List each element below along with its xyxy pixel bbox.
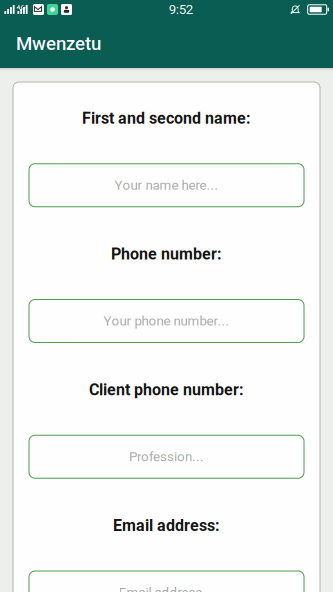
staticText: Profession... bbox=[129, 449, 204, 464]
staticText: First and second name: bbox=[82, 109, 251, 128]
staticText: Email address: bbox=[113, 516, 220, 535]
staticText: Email address... bbox=[118, 585, 214, 592]
staticText: Client phone number: bbox=[89, 380, 244, 399]
staticText: Mwenzetu bbox=[16, 33, 101, 54]
button[interactable]: Your name here... bbox=[29, 164, 304, 207]
button[interactable]: Your phone number... bbox=[29, 299, 304, 342]
staticText: Phone number: bbox=[111, 245, 222, 264]
staticText: Your name here... bbox=[114, 177, 218, 193]
button[interactable]: Profession... bbox=[29, 435, 304, 478]
staticText: 9:52 bbox=[169, 2, 193, 17]
button[interactable]: Email address... bbox=[29, 571, 304, 592]
staticText: Your phone number... bbox=[103, 313, 229, 329]
